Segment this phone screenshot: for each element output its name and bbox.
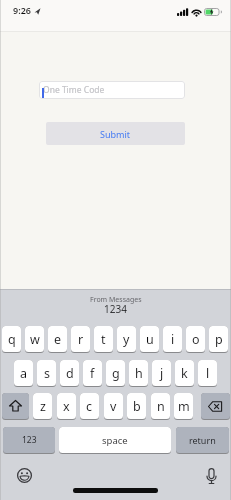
staticText: s [44, 365, 50, 382]
button[interactable]: e [48, 326, 67, 353]
staticText: z [40, 398, 46, 415]
button[interactable]: b [127, 393, 146, 420]
staticText: e [54, 331, 62, 348]
button[interactable]: r [71, 326, 90, 353]
button[interactable]: space [59, 427, 171, 454]
button[interactable]: w [25, 326, 44, 353]
staticText: u [146, 331, 154, 348]
staticText: b [133, 398, 141, 415]
button[interactable]: k [175, 360, 194, 387]
button[interactable]: s [37, 360, 56, 387]
staticText: l [206, 365, 210, 382]
staticText: t [101, 331, 106, 348]
button[interactable]: Submit [46, 122, 185, 145]
button[interactable]: z [33, 393, 52, 420]
button[interactable]: 123 [3, 427, 55, 454]
button[interactable]: n [151, 393, 170, 420]
button[interactable]: v [104, 393, 123, 420]
staticText: j [160, 365, 164, 382]
button[interactable]: y [117, 326, 136, 353]
button[interactable]: d [60, 360, 79, 387]
button[interactable]: q [2, 326, 21, 353]
staticText: f [90, 365, 95, 382]
button[interactable]: From Messages [0, 295, 231, 305]
staticText: Submit [100, 128, 131, 140]
staticText: i [171, 331, 175, 348]
staticText: k [181, 365, 188, 382]
staticText: One Time Code [43, 84, 105, 96]
button[interactable]: i [163, 326, 182, 353]
button[interactable]: m [174, 393, 193, 420]
button[interactable] [2, 393, 29, 420]
staticText: g [112, 365, 120, 382]
staticText: p [215, 331, 223, 348]
staticText: q [8, 331, 16, 348]
button[interactable]: h [129, 360, 148, 387]
button[interactable]: c [80, 393, 99, 420]
staticText: c [86, 398, 93, 415]
button[interactable]: p [209, 326, 228, 353]
button[interactable]: x [57, 393, 76, 420]
staticText: n [157, 398, 165, 415]
button[interactable]: t [94, 326, 113, 353]
staticText: m [178, 398, 190, 415]
staticText: v [110, 398, 117, 415]
button[interactable] [13, 464, 35, 486]
staticText: a [20, 365, 28, 382]
staticText: 123 [22, 434, 37, 446]
button[interactable]: f [83, 360, 102, 387]
staticText: y [123, 331, 130, 348]
staticText: h [135, 365, 143, 382]
button[interactable]: l [198, 360, 217, 387]
button[interactable] [200, 466, 222, 487]
staticText: 1234 [104, 302, 127, 316]
button[interactable] [201, 393, 230, 420]
button[interactable]: o [186, 326, 205, 353]
button[interactable]: One Time Code [39, 81, 185, 99]
staticText: 9:26 [13, 4, 31, 16]
button[interactable]: return [176, 427, 229, 454]
button[interactable]: u [140, 326, 159, 353]
staticText: w [30, 331, 40, 348]
staticText: o [192, 331, 200, 348]
staticText: space [102, 434, 128, 447]
staticText: From Messages [90, 295, 142, 305]
button[interactable]: g [106, 360, 125, 387]
staticText: x [63, 398, 70, 415]
button[interactable]: j [152, 360, 171, 387]
staticText: r [78, 331, 84, 348]
staticText: d [66, 365, 74, 382]
button[interactable]: a [14, 360, 33, 387]
staticText: return [189, 434, 216, 446]
